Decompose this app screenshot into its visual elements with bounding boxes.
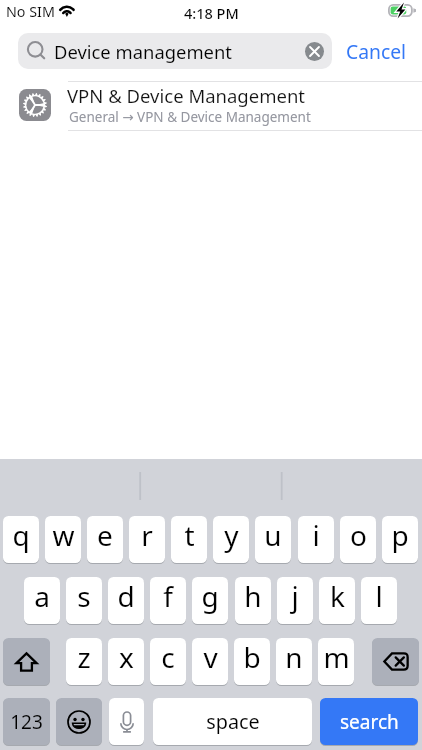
button[interactable]: u [255,516,291,563]
button[interactable]: x [108,638,144,685]
button[interactable]: c [150,638,186,685]
button[interactable]: search [320,698,418,745]
staticText: p [391,516,409,554]
staticText: f [163,577,173,615]
staticText: c [161,638,175,676]
staticText: m [323,638,350,676]
button[interactable]: Cancel [338,36,410,66]
staticText: a [34,577,50,615]
button[interactable]: e [87,516,123,563]
staticText: 123 [10,709,43,735]
staticText: w [52,516,75,554]
staticText: r [141,516,153,554]
staticText: y [224,516,239,554]
button[interactable]: l [361,577,397,624]
staticText: t [184,516,195,554]
button[interactable]: 123 [3,698,50,745]
button[interactable]: w [45,516,81,563]
button[interactable]: k [319,577,355,624]
staticText: q [12,516,30,554]
staticText: x [119,638,134,676]
button[interactable]: Emoji keyboard [56,698,102,745]
button[interactable]: Dictation [109,698,144,745]
staticText: i [312,516,320,554]
button[interactable]: j [277,577,313,624]
button[interactable]: Backspace [372,638,419,685]
staticText: g [201,577,219,615]
button[interactable]: a [24,577,60,624]
staticText: Cancel [346,38,407,64]
staticText: VPN & Device Management [67,83,306,108]
staticText: o [350,516,367,554]
button[interactable]: n [276,638,312,685]
button[interactable]: t [171,516,207,563]
staticText: 4:18 PM [184,3,239,23]
button[interactable]: Device management [18,33,332,69]
staticText: k [330,577,345,615]
button[interactable]: f [150,577,186,624]
button[interactable]: q [3,516,39,563]
staticText: b [243,638,261,676]
button[interactable]: Clear text [300,37,328,65]
button[interactable]: v [192,638,228,685]
staticText: Device management [54,39,232,64]
staticText: v [203,638,218,676]
staticText: d [117,577,135,615]
staticText: u [264,516,282,554]
staticText: search [340,709,399,735]
button[interactable]: p [382,516,418,563]
button[interactable]: b [234,638,270,685]
button[interactable]: z [66,638,102,685]
staticText: l [375,577,383,615]
staticText: j [291,577,299,615]
button[interactable]: r [129,516,165,563]
button[interactable]: g [192,577,228,624]
button[interactable]: y [213,516,249,563]
staticText: z [77,638,91,676]
staticText: General → VPN & Device Management [69,108,311,126]
staticText: h [244,577,262,615]
button[interactable]: s [66,577,102,624]
button[interactable]: i [298,516,334,563]
button[interactable]: m [318,638,354,685]
button[interactable]: VPN & Device Management [0,80,422,131]
button[interactable]: Shift [3,638,50,685]
staticText: No SIM [6,2,55,21]
button[interactable]: o [340,516,376,563]
staticText: s [77,577,91,615]
staticText: n [285,638,303,676]
button[interactable]: space [153,698,312,745]
staticText: e [97,516,113,554]
button[interactable]: h [235,577,271,624]
button[interactable]: d [108,577,144,624]
staticText: space [206,708,260,735]
